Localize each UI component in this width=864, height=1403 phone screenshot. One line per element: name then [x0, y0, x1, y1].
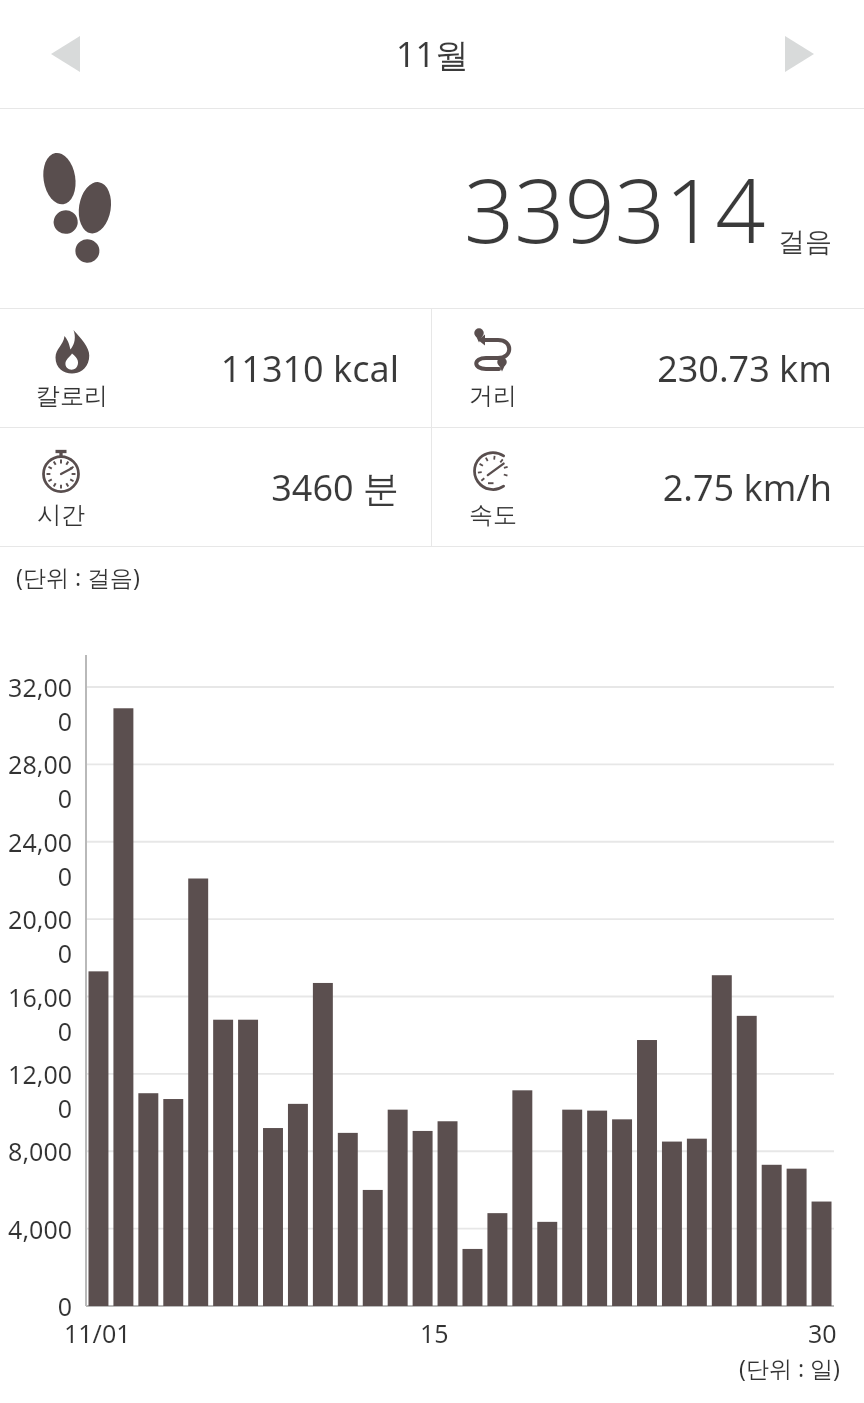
- staticText: (단위 : 걸음): [16, 561, 140, 592]
- staticText: 30: [808, 1316, 837, 1350]
- button[interactable]: 속도: [432, 428, 864, 546]
- staticText: 8,000: [0, 1134, 72, 1168]
- staticText: 0: [0, 1289, 72, 1323]
- button[interactable]: 339314: [0, 109, 864, 308]
- button[interactable]: Next month: [762, 17, 836, 91]
- staticText: 칼로리: [36, 381, 108, 411]
- staticText: 11310 kcal: [0, 344, 399, 393]
- staticText: 230.73 km: [432, 344, 832, 393]
- staticText: 339314: [464, 149, 766, 269]
- button[interactable]: Previous month: [28, 17, 102, 91]
- staticText: 속도: [469, 500, 517, 530]
- staticText: (단위 : 일): [739, 1352, 840, 1383]
- staticText: 32,000: [0, 670, 72, 738]
- button[interactable]: 칼로리: [0, 309, 431, 427]
- staticText: 11/01: [64, 1316, 131, 1350]
- staticText: 2.75 km/h: [432, 463, 832, 512]
- staticText: 걸음: [778, 225, 832, 259]
- staticText: 11월: [396, 31, 469, 77]
- staticText: 시간: [37, 500, 85, 530]
- staticText: 20,000: [0, 902, 72, 970]
- button[interactable]: 거리: [432, 309, 864, 427]
- staticText: 거리: [469, 381, 517, 411]
- staticText: 15: [420, 1316, 449, 1350]
- staticText: 12,000: [0, 1057, 72, 1125]
- button[interactable]: 시간: [0, 428, 431, 546]
- staticText: 24,000: [0, 825, 72, 893]
- staticText: 16,000: [0, 980, 72, 1048]
- staticText: 28,000: [0, 747, 72, 815]
- staticText: 4,000: [0, 1212, 72, 1246]
- staticText: 3460 분: [0, 463, 399, 512]
